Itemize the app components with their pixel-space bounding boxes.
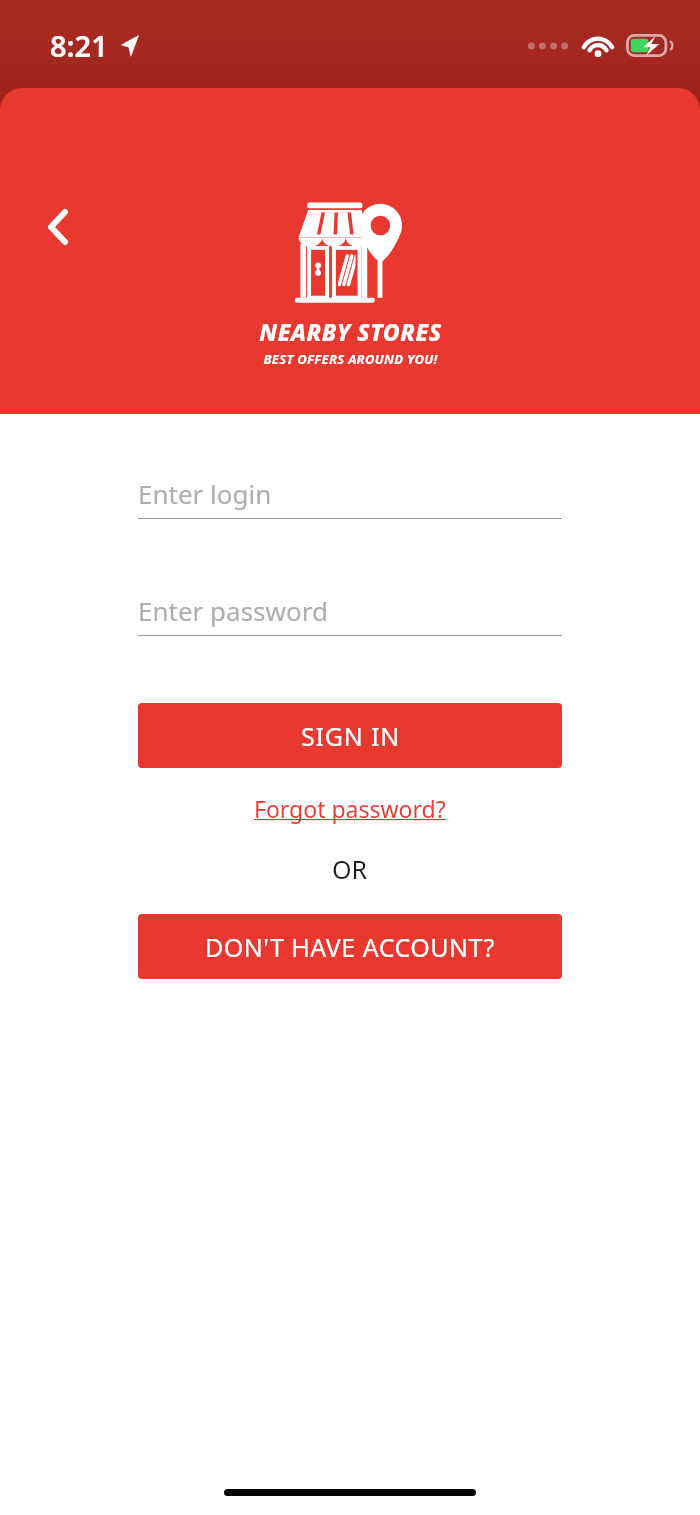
staticText: OR [332, 852, 368, 886]
staticText: Enter password [138, 593, 328, 628]
staticText: DON'T HAVE ACCOUNT? [205, 930, 495, 964]
staticText: SIGN IN [301, 719, 400, 753]
button[interactable]: Enter password [138, 593, 562, 636]
button[interactable]: SIGN IN [138, 703, 562, 768]
staticText: NEARBY STORES [259, 316, 442, 347]
staticText: Enter login [138, 476, 272, 511]
button[interactable]: Enter login [138, 476, 562, 519]
staticText: 8:21 [50, 26, 108, 65]
button[interactable]: DON'T HAVE ACCOUNT? [138, 914, 562, 979]
staticText: BEST OFFERS AROUND YOU! [263, 350, 438, 368]
staticText: Forgot password? [254, 793, 446, 824]
button[interactable]: Forgot password? [246, 789, 454, 828]
button[interactable]: Back [30, 199, 86, 255]
